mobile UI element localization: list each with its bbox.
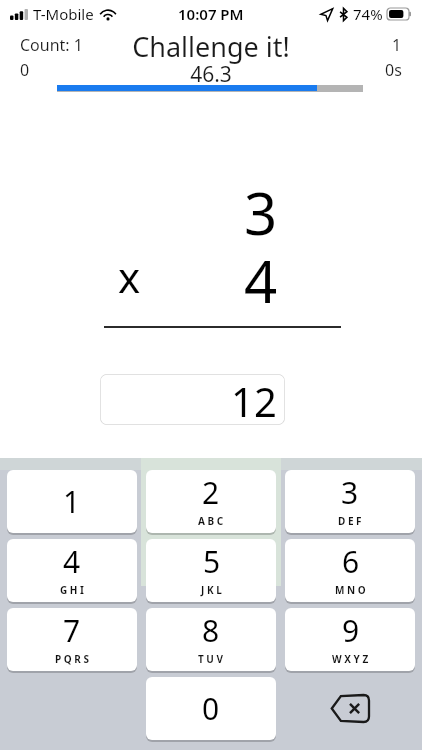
button[interactable]: 7: [7, 608, 137, 671]
staticText: D E F: [338, 514, 362, 528]
staticText: 8: [202, 610, 220, 651]
staticText: Challenge it!: [132, 28, 290, 65]
staticText: 1: [63, 481, 81, 522]
staticText: 0: [202, 688, 220, 729]
staticText: 3: [341, 472, 359, 513]
staticText: 12: [231, 374, 277, 425]
staticText: 4: [244, 241, 278, 320]
staticText: G H I: [60, 583, 84, 597]
button[interactable]: 12: [100, 374, 285, 425]
staticText: 10:07 PM: [178, 4, 244, 24]
staticText: 2: [202, 472, 220, 513]
staticText: A B C: [198, 514, 224, 528]
button[interactable]: 8: [146, 608, 276, 671]
staticText: 9: [342, 610, 360, 651]
staticText: 74%: [353, 4, 383, 24]
button[interactable]: 3: [285, 470, 415, 533]
staticText: x: [118, 248, 141, 305]
staticText: 4: [63, 541, 81, 582]
staticText: P Q R S: [55, 652, 89, 666]
button[interactable]: 1: [7, 470, 137, 533]
staticText: 6: [342, 541, 360, 582]
button[interactable]: 0: [146, 677, 276, 740]
button[interactable]: 6: [285, 539, 415, 602]
staticText: T-Mobile: [33, 4, 94, 24]
staticText: T U V: [198, 652, 224, 666]
staticText: Count: 1: [20, 34, 83, 56]
staticText: M N O: [335, 583, 366, 597]
staticText: 0s: [385, 59, 402, 81]
button[interactable]: 9: [285, 608, 415, 671]
staticText: J K L: [201, 583, 222, 597]
staticText: 0: [20, 59, 30, 81]
staticText: 3: [244, 173, 278, 252]
staticText: 46.3: [190, 60, 232, 89]
staticText: W X Y Z: [332, 652, 369, 666]
button[interactable]: 5: [146, 539, 276, 602]
staticText: 1: [392, 34, 402, 56]
button[interactable]: 4: [7, 539, 137, 602]
staticText: 5: [203, 541, 221, 582]
button[interactable]: 2: [146, 470, 276, 533]
button[interactable]: Delete: [285, 677, 415, 740]
staticText: 7: [63, 610, 81, 651]
